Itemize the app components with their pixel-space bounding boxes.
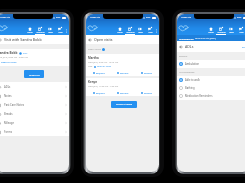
- button[interactable]: Visits: [135, 27, 145, 35]
- button[interactable]: Bathing: [177, 84, 245, 92]
- staticText: Home: [27, 31, 33, 34]
- staticText: DECLINE: [120, 92, 129, 95]
- button[interactable]: ADLs: [0, 82, 69, 91]
- button[interactable]: REQUEST: [86, 70, 111, 76]
- staticText: Bathing: [185, 86, 195, 90]
- staticText: CLOCKED IN: [179, 37, 194, 40]
- staticText: Wed Jul 8, 11:00 AM - 1:00 PM: [88, 85, 119, 88]
- button[interactable]: Schedule: [216, 27, 226, 35]
- staticText: REQUEST: [96, 72, 105, 75]
- staticText: Able to walk: [185, 78, 200, 82]
- staticText: Wed Jul 8, 9:45 AM - 10:15 AM: [88, 61, 119, 64]
- staticText: Breaks: [4, 112, 13, 116]
- staticText: Chat: [58, 31, 63, 34]
- staticText: Past Care Notes: [4, 103, 25, 107]
- staticText: CLOCK IN: [29, 73, 40, 76]
- staticText: 52%: [146, 16, 151, 19]
- staticText: EXERCISE: [179, 55, 188, 58]
- button[interactable]: Forms: [0, 127, 69, 136]
- button[interactable]: CLOCK IN: [24, 70, 44, 78]
- staticText: DISMISS: [144, 72, 153, 75]
- button[interactable]: DECLINE: [111, 70, 135, 76]
- staticText: Mileage: [4, 121, 15, 125]
- staticText: since 8:24 AM (33m): [195, 37, 216, 40]
- button[interactable]: REQUEST: [86, 90, 111, 96]
- staticText: OPEN VISITS: [88, 48, 101, 51]
- staticText: Home: [208, 31, 214, 34]
- staticText: ADLs: [185, 44, 194, 49]
- button[interactable]: SAVE: [242, 45, 245, 48]
- staticText: OPEN IN MAPS: [1, 61, 17, 64]
- button[interactable]: Back: [179, 45, 183, 49]
- button[interactable]: Notes: [0, 91, 69, 100]
- staticText: 52%: [56, 16, 61, 19]
- staticText: ADLs: [4, 85, 11, 89]
- staticText: Schedule: [217, 31, 226, 34]
- staticText: Kenyn: [88, 80, 98, 84]
- staticText: 52%: [237, 16, 242, 19]
- staticText: Martha: [88, 56, 99, 60]
- staticText: Ambulation: [185, 62, 200, 66]
- button[interactable]: Past Care Notes: [0, 100, 69, 109]
- button[interactable]: Home: [25, 27, 35, 35]
- staticText: Visit: [88, 65, 93, 68]
- staticText: Visits: [138, 31, 143, 34]
- staticText: Visits: [229, 31, 234, 34]
- staticText: Sandra Bobb: [0, 51, 18, 55]
- staticText: SHOW 5 MORE: [116, 103, 133, 106]
- button[interactable]: Schedule: [125, 27, 135, 35]
- button[interactable]: DISMISS: [135, 90, 159, 96]
- staticText: Open visits: [94, 37, 113, 42]
- button[interactable]: SHOW 5 MORE: [111, 101, 137, 108]
- staticText: OPEN IN MAPS: [97, 65, 112, 68]
- button[interactable]: DECLINE: [111, 90, 135, 96]
- button[interactable]: Ambulation: [177, 60, 245, 68]
- button[interactable]: Info: [102, 48, 105, 51]
- staticText: Chat: [148, 31, 153, 34]
- button[interactable]: Visits: [45, 27, 55, 35]
- staticText: Schedule: [36, 31, 45, 34]
- button[interactable]: Back: [0, 38, 2, 42]
- button[interactable]: More options: [155, 26, 158, 35]
- staticText: UNCATEGORIZED: [179, 71, 195, 74]
- button[interactable]: Chat: [236, 27, 245, 35]
- staticText: Notes: [4, 94, 12, 98]
- button[interactable]: Chat: [145, 27, 155, 35]
- button[interactable]: Home: [115, 27, 125, 35]
- staticText: DISMISS: [144, 92, 153, 95]
- button[interactable]: Chat: [55, 27, 65, 35]
- button[interactable]: Home: [206, 27, 216, 35]
- staticText: DECLINE: [120, 72, 129, 75]
- button[interactable]: DISMISS: [135, 70, 159, 76]
- button[interactable]: Medication Reminders: [177, 92, 245, 100]
- staticText: Home: [117, 31, 123, 34]
- button[interactable]: Visits: [226, 27, 236, 35]
- staticText: CALL: [23, 52, 28, 55]
- staticText: 10:00 AM: [0, 16, 11, 19]
- staticText: REQUEST: [96, 92, 105, 95]
- button[interactable]: Schedule: [35, 27, 45, 35]
- button[interactable]: Mileage: [0, 118, 69, 127]
- staticText: Thu Jul 9, 8:00 AM - 9:00 AM: [0, 56, 28, 59]
- staticText: Visits: [48, 31, 53, 34]
- staticText: Schedule: [126, 31, 135, 34]
- button[interactable]: Back: [88, 38, 92, 42]
- staticText: Chat: [239, 31, 244, 34]
- staticText: Visit with Sandra Bobb: [4, 37, 42, 42]
- button[interactable]: More options: [65, 26, 68, 35]
- staticText: Medication Reminders: [185, 94, 213, 98]
- staticText: Forms: [4, 130, 12, 134]
- button[interactable]: Able to walk: [177, 76, 245, 84]
- button[interactable]: OPEN IN MAPS: [0, 61, 17, 64]
- staticText: 10:00 AM: [181, 16, 192, 19]
- button[interactable]: Breaks: [0, 109, 69, 118]
- staticText: 10:00 AM: [90, 16, 101, 19]
